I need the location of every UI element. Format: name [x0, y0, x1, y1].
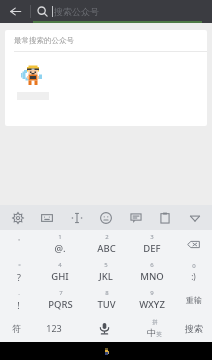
staticText: @.: [54, 242, 66, 255]
staticText: 搜索公众号: [54, 6, 99, 17]
button[interactable]: 2: [83, 230, 129, 258]
button[interactable]: 1: [37, 230, 83, 258]
staticText: 最常搜索的公众号: [14, 36, 74, 45]
staticText: GHI: [51, 270, 69, 283]
staticText: :): [191, 271, 196, 282]
button[interactable]: Keyboard: [35, 206, 59, 230]
button[interactable]: 8: [83, 286, 129, 314]
staticText: 1: [58, 233, 62, 241]
button[interactable]: 0: [175, 258, 212, 286]
button[interactable]: Messages: [124, 206, 148, 230]
button[interactable]: Cursor: [65, 206, 89, 230]
staticText: 中: [147, 327, 156, 338]
staticText: 8: [105, 289, 109, 297]
staticText: 0: [192, 262, 196, 270]
staticText: !: [17, 299, 20, 311]
button[interactable]: 最常搜索的公众号: [5, 30, 207, 126]
staticText: ·: [18, 290, 20, 298]
staticText: WXYZ: [139, 298, 165, 311]
staticText: ABC: [97, 242, 116, 255]
staticText: 9: [150, 289, 154, 297]
button[interactable]: 符: [0, 314, 33, 342]
staticText: 5: [104, 261, 108, 269]
button[interactable]: Settings: [6, 206, 30, 230]
button[interactable]: 7: [37, 286, 83, 314]
button[interactable]: Hide keyboard: [183, 206, 207, 230]
button[interactable]: [175, 230, 212, 258]
staticText: 2: [105, 233, 109, 241]
staticText: TUV: [97, 298, 116, 311]
staticText: 符: [12, 323, 21, 334]
staticText: 重输: [186, 295, 202, 305]
staticText: 拼: [152, 319, 158, 326]
button[interactable]: 4: [37, 258, 83, 286]
button[interactable]: 拼: [133, 314, 175, 342]
staticText: 7: [59, 289, 63, 297]
staticText: 英: [156, 331, 162, 338]
staticText: 3: [150, 233, 154, 241]
staticText: ?: [17, 271, 21, 283]
button[interactable]: Voice input: [75, 314, 133, 342]
button[interactable]: ·: [0, 286, 37, 314]
button[interactable]: 搜索公众号: [31, 0, 208, 23]
button[interactable]: 搜索: [175, 314, 212, 342]
staticText: °: [18, 262, 21, 270]
staticText: 4: [58, 261, 62, 269]
staticText: 6: [150, 261, 154, 269]
button[interactable]: 重输: [175, 286, 212, 314]
button[interactable]: 6: [129, 258, 175, 286]
button[interactable]: 5: [83, 258, 129, 286]
button[interactable]: 3: [129, 230, 175, 258]
staticText: 123: [46, 322, 62, 334]
button[interactable]: Clipboard: [153, 206, 177, 230]
staticText: PQRS: [48, 298, 73, 311]
button[interactable]: [21, 64, 53, 100]
button[interactable]: 123: [33, 314, 75, 342]
staticText: 搜索: [185, 323, 203, 334]
staticText: DEF: [143, 242, 161, 255]
staticText: ': [18, 237, 20, 247]
button[interactable]: 9: [129, 286, 175, 314]
staticText: MNO: [140, 270, 164, 283]
button[interactable]: Emoji: [94, 206, 118, 230]
staticText: JKL: [99, 270, 113, 283]
button[interactable]: °: [0, 258, 37, 286]
button[interactable]: Back: [0, 0, 30, 23]
